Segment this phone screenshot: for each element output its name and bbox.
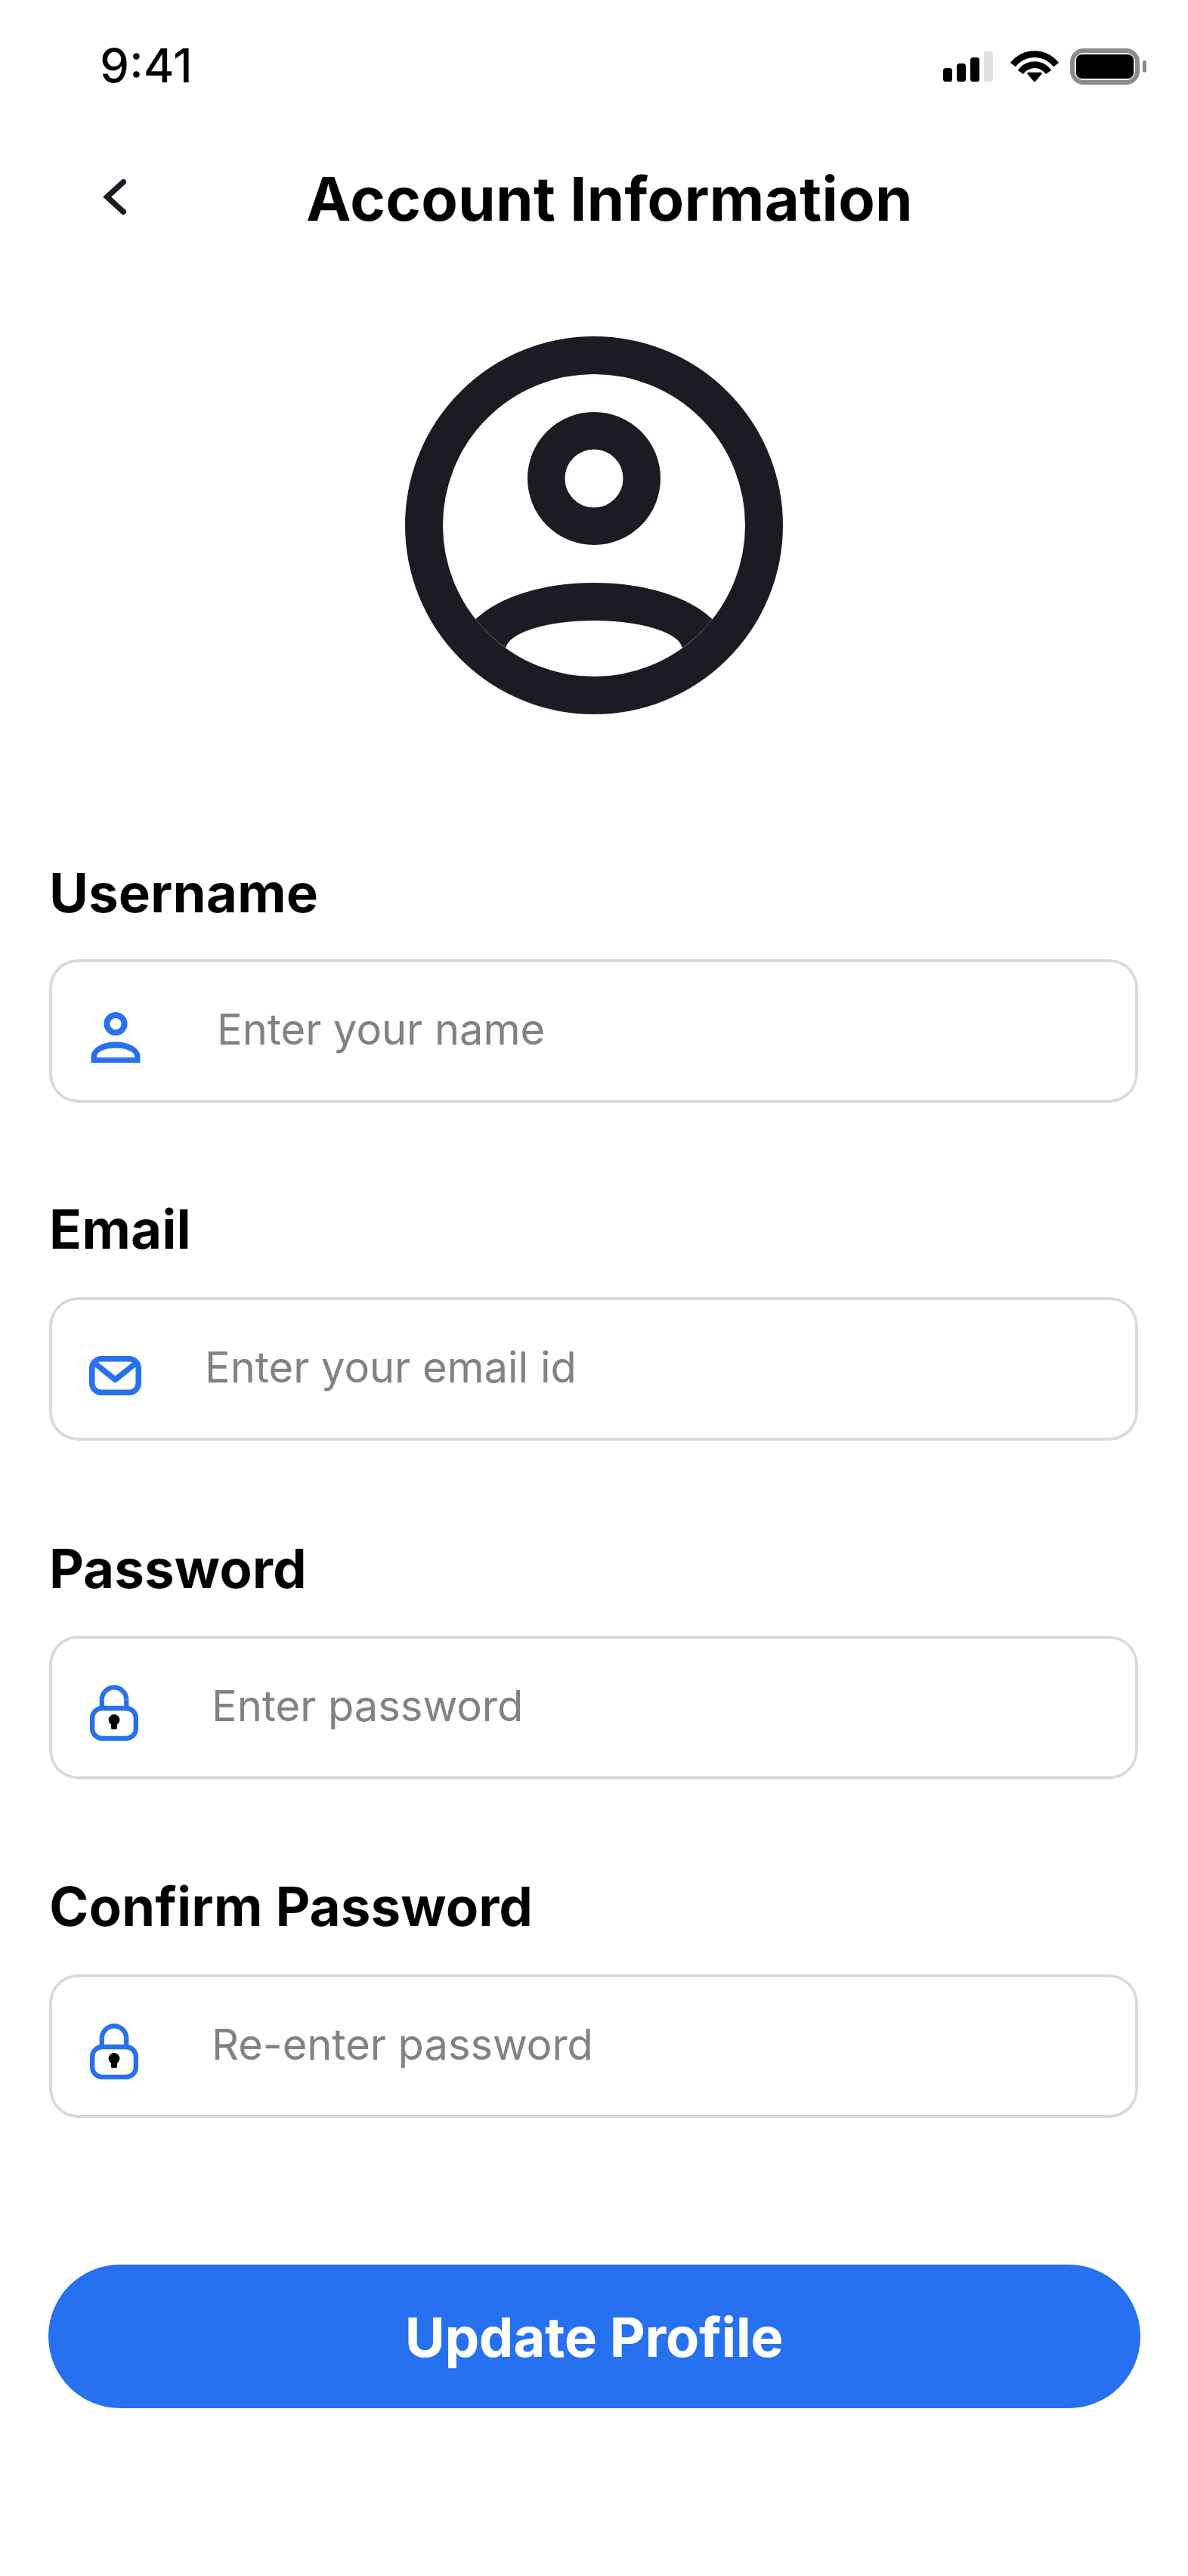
staticText: Account Information [306, 162, 913, 235]
staticText: Enter password [212, 1680, 524, 1732]
staticText: Email [49, 1197, 191, 1262]
staticText: 9:41 [100, 37, 193, 94]
button[interactable]: Back [70, 151, 160, 242]
staticText: Update Profile [405, 2304, 784, 2370]
button[interactable]: Enter your email id [49, 1297, 1138, 1441]
staticText: Enter your name [217, 1004, 546, 1055]
button[interactable]: Update Profile [48, 2265, 1140, 2408]
button[interactable]: Enter your name [49, 959, 1138, 1103]
staticText: Password [49, 1536, 307, 1601]
staticText: Enter your email id [205, 1342, 577, 1393]
staticText: Confirm Password [49, 1874, 534, 1939]
staticText: Username [49, 860, 318, 925]
staticText: Re-enter password [212, 2019, 593, 2070]
button[interactable]: Re-enter password [49, 1974, 1138, 2118]
button[interactable]: Enter password [49, 1636, 1138, 1779]
